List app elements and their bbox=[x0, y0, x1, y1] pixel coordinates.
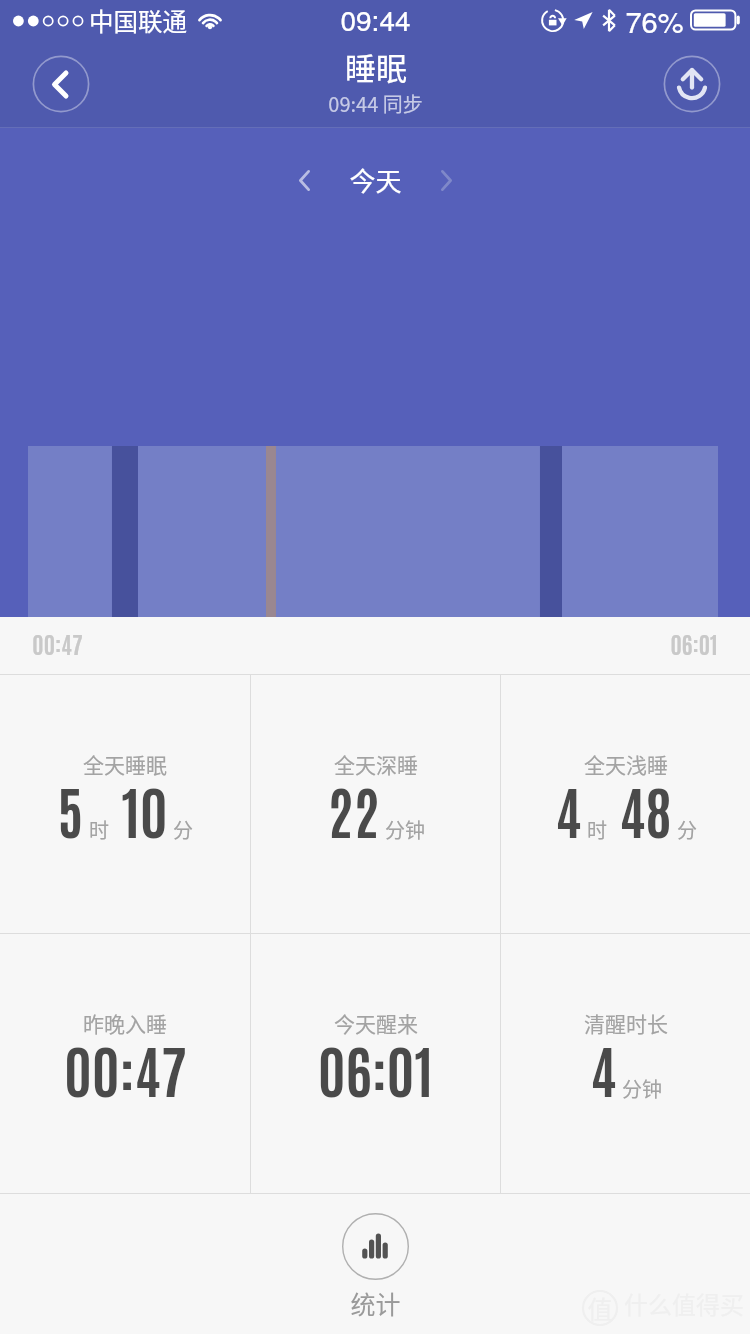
staticText: 今天醒来 bbox=[334, 1008, 418, 1038]
button[interactable]: Sync bbox=[660, 52, 724, 116]
staticText: 4 bbox=[555, 773, 582, 845]
staticText: 全天深睡 bbox=[334, 749, 418, 779]
staticText: 5 bbox=[57, 773, 84, 845]
button[interactable]: 昨晚入睡 bbox=[0, 934, 250, 1193]
staticText: 00:47 bbox=[32, 628, 83, 658]
staticText: 今天 bbox=[349, 161, 402, 199]
staticText: 22 bbox=[327, 773, 380, 845]
staticText: 06:01 bbox=[318, 1032, 433, 1104]
button[interactable]: Back bbox=[29, 52, 93, 116]
button[interactable]: Next day bbox=[419, 153, 473, 207]
button[interactable]: 今天醒来 bbox=[251, 934, 500, 1193]
button[interactable]: 全天睡眠 bbox=[0, 675, 250, 933]
staticText: 中国联通 bbox=[89, 3, 187, 38]
button[interactable]: Previous day bbox=[277, 153, 331, 207]
staticText: 48 bbox=[619, 773, 672, 845]
staticText: 清醒时长 bbox=[584, 1008, 668, 1038]
staticText: 分 bbox=[677, 815, 697, 844]
staticText: 00:47 bbox=[64, 1032, 187, 1104]
staticText: 统计 bbox=[350, 1285, 401, 1321]
staticText: 时 bbox=[89, 815, 109, 844]
staticText: 分钟 bbox=[385, 815, 425, 844]
button[interactable]: 统计 bbox=[342, 1213, 409, 1321]
staticText: 10 bbox=[121, 773, 168, 845]
staticText: 全天睡眠 bbox=[83, 749, 167, 779]
button[interactable]: 全天浅睡 bbox=[501, 675, 750, 933]
staticText: 4 bbox=[590, 1032, 617, 1104]
staticText: 昨晚入睡 bbox=[83, 1008, 167, 1038]
staticText: 06:01 bbox=[670, 628, 718, 658]
staticText: 全天浅睡 bbox=[584, 749, 668, 779]
staticText: 分钟 bbox=[622, 1074, 662, 1103]
staticText: 值 bbox=[587, 1290, 613, 1326]
staticText: 76% bbox=[625, 0, 684, 40]
staticText: 09:44 bbox=[340, 0, 411, 39]
staticText: 时 bbox=[587, 815, 607, 844]
staticText: 分 bbox=[173, 815, 193, 844]
staticText: 睡眠 bbox=[345, 44, 407, 89]
button[interactable]: 全天深睡 bbox=[251, 675, 500, 933]
staticText: 09:44 同步 bbox=[328, 89, 423, 118]
button[interactable]: 清醒时长 bbox=[501, 934, 750, 1193]
